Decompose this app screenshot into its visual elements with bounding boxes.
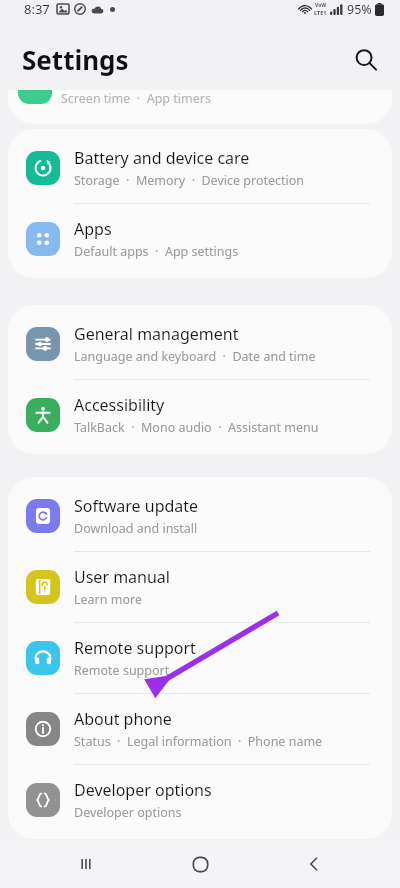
staticText: About phone	[74, 708, 172, 730]
button[interactable]: Remote support	[8, 623, 392, 693]
staticText: Status · Legal information · Phone name	[74, 733, 323, 750]
staticText: VoW	[315, 2, 327, 9]
button[interactable]: Recents	[58, 840, 114, 888]
staticText: Learn more	[74, 591, 142, 608]
staticText: Developer options	[74, 804, 182, 821]
button[interactable]: About phone	[8, 694, 392, 764]
staticText: Apps	[74, 218, 112, 240]
button[interactable]: User manual	[8, 552, 392, 622]
staticText: Accessibility	[74, 394, 165, 416]
staticText: General management	[74, 323, 239, 345]
staticText: Screen time · App timers	[61, 90, 211, 107]
button[interactable]: Back	[286, 840, 342, 888]
staticText: Settings	[22, 42, 129, 77]
staticText: Language and keyboard · Date and time	[74, 348, 316, 365]
button[interactable]: General management	[8, 309, 392, 379]
staticText: Remote support	[74, 662, 170, 679]
staticText: Download and install	[74, 520, 198, 537]
staticText: TalkBack · Mono audio · Assistant menu	[74, 419, 319, 436]
staticText: Remote support	[74, 637, 196, 659]
staticText: Developer options	[74, 779, 212, 801]
button[interactable]: Developer options	[8, 765, 392, 835]
staticText: Battery and device care	[74, 147, 250, 169]
staticText: Software update	[74, 495, 199, 517]
button[interactable]: Home	[172, 840, 228, 888]
button[interactable]: Accessibility	[8, 380, 392, 450]
button[interactable]: Search	[344, 38, 388, 82]
button[interactable]: Software update	[8, 481, 392, 551]
staticText: LTE1	[314, 9, 327, 16]
button[interactable]: Apps	[8, 204, 392, 274]
staticText: Storage · Memory · Device protection	[74, 172, 305, 189]
staticText: Default apps · App settings	[74, 243, 239, 260]
button[interactable]: Battery and device care	[8, 133, 392, 203]
staticText: 8:37	[24, 0, 50, 18]
staticText: 95%	[347, 1, 372, 18]
staticText: User manual	[74, 566, 170, 588]
